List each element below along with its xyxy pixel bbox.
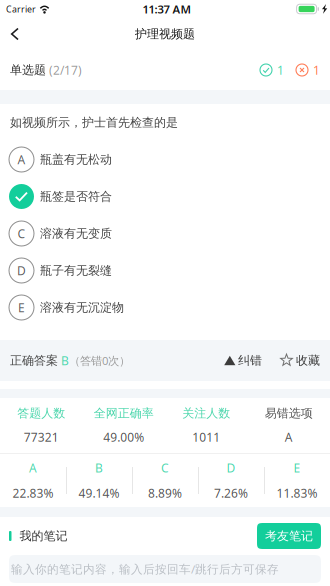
staticText: 输入你的笔记内容，输入后按回车/跳行后方可保存 [11,561,279,577]
staticText: 8.89% [148,485,182,501]
staticText: 7.26% [214,485,248,501]
staticText: 1011 [192,429,220,445]
staticText: 关注人数 [182,406,230,421]
button[interactable]: 纠错 [224,340,262,381]
staticText: 11.83% [276,485,317,501]
staticText: （答错0次） [69,353,130,368]
staticText: 49.00% [103,429,144,445]
staticText: A [17,151,25,168]
staticText: D [17,262,26,279]
staticText: 正确答案 [10,353,58,368]
staticText: 1 [313,62,320,78]
staticText: 1 [277,62,284,78]
staticText: 77321 [24,429,59,445]
staticText: 护理视频题 [135,26,195,41]
staticText: 瓶盖有无松动 [40,152,112,167]
staticText: B [58,352,69,369]
staticText: 我的笔记 [11,528,67,543]
staticText: (2/17) [46,62,82,78]
staticText: 如视频所示，护士首先检查的是 [10,115,178,130]
staticText: 易错选项 [265,406,313,421]
staticText: 答题人数 [17,406,65,421]
staticText: A [29,460,37,476]
staticText: 22.83% [12,485,53,501]
staticText: 溶液有无沉淀物 [40,300,124,315]
button[interactable]: D [0,252,330,289]
staticText: Carrier [6,3,36,15]
button[interactable]: 考友笔记 [257,523,321,549]
staticText: 全网正确率 [94,406,154,421]
staticText: 溶液有无变质 [40,226,112,241]
staticText: C [161,460,169,476]
staticText: 收藏 [296,353,320,368]
staticText: 纠错 [238,353,262,368]
staticText: E [293,460,300,476]
staticText: 11:37 AM [142,1,191,17]
staticText: B [95,460,103,476]
staticText: 瓶子有无裂缝 [40,263,112,278]
staticText: D [226,460,235,476]
staticText: 49.14% [78,485,119,501]
staticText: A [285,429,293,445]
button[interactable]: E [0,289,330,326]
staticText: 瓶签是否符合 [40,189,112,204]
button[interactable]: 瓶签是否符合 [0,178,330,215]
button[interactable]: A [0,141,330,178]
button[interactable]: 收藏 [280,340,320,381]
staticText: 考友笔记 [265,528,313,543]
staticText: 单选题 [10,62,46,77]
button[interactable]: Back [0,18,30,50]
button[interactable]: C [0,215,330,252]
staticText: C [17,225,25,242]
staticText: E [18,299,25,316]
